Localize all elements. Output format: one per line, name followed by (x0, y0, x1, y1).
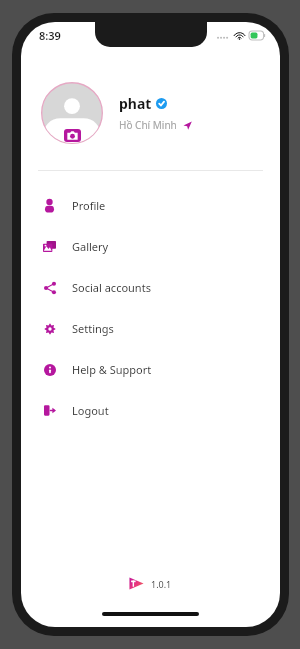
button[interactable]: Social accounts (21, 267, 280, 308)
staticText: 1.0.1 (151, 578, 172, 590)
staticText: Profile (72, 198, 106, 213)
staticText: phat (119, 94, 152, 113)
button[interactable]: Change profile photo (64, 129, 81, 142)
staticText: Social accounts (72, 280, 151, 295)
button[interactable]: Settings (21, 308, 280, 349)
staticText: Gallery (72, 239, 109, 254)
staticText: Hồ Chí Minh (119, 118, 177, 132)
staticText: Settings (72, 321, 114, 336)
staticText: Logout (72, 403, 109, 418)
button[interactable]: Logout (21, 390, 280, 431)
button[interactable]: Help & Support (21, 349, 280, 390)
button[interactable]: Gallery (21, 226, 280, 267)
button[interactable]: Profile (21, 185, 280, 226)
staticText: Help & Support (72, 362, 152, 377)
staticText: 8:39 (39, 28, 61, 43)
